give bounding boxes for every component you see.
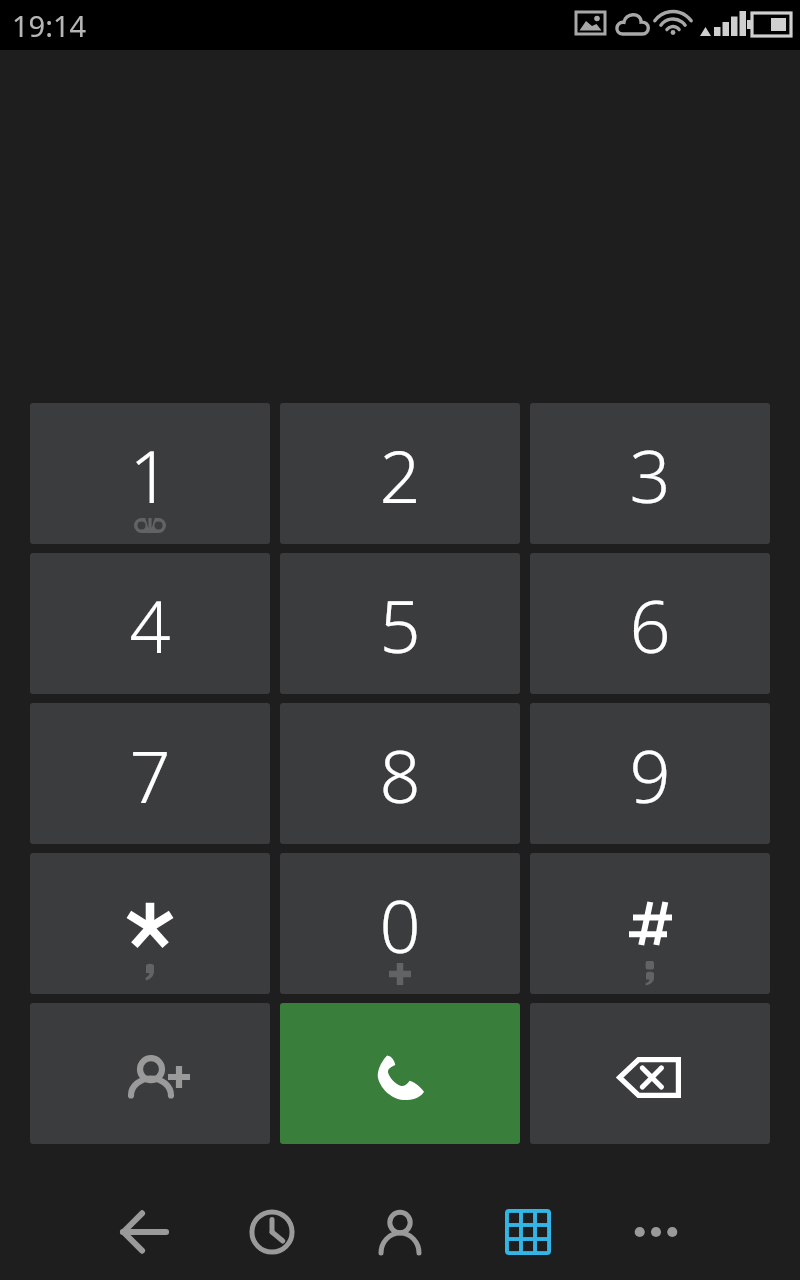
staticText: 2 [379, 426, 421, 524]
button[interactable]: 4 [30, 553, 270, 694]
button[interactable]: 6 [530, 553, 770, 694]
button[interactable]: More options [592, 1144, 720, 1280]
button[interactable]: Back [80, 1144, 208, 1280]
button[interactable]: Add contact [30, 1003, 270, 1144]
staticText: 6 [629, 576, 671, 674]
button[interactable]: Delete [530, 1003, 770, 1144]
button[interactable]: 3 [530, 403, 770, 544]
button[interactable]: 5 [280, 553, 520, 694]
button[interactable]: # [530, 853, 770, 994]
staticText: 9 [629, 726, 671, 824]
staticText: 7 [129, 726, 171, 824]
button[interactable]: * [30, 853, 270, 994]
staticText: 1 [129, 426, 171, 524]
button[interactable]: 8 [280, 703, 520, 844]
staticText: 19:14 [12, 6, 87, 45]
staticText: 0 [379, 876, 421, 974]
button[interactable]: 1 [30, 403, 270, 544]
button[interactable]: Contacts [336, 1144, 464, 1280]
button[interactable]: Keypad [464, 1144, 592, 1280]
button[interactable]: Recent calls [208, 1144, 336, 1280]
staticText: 4 [129, 576, 171, 674]
staticText: 3 [629, 426, 671, 524]
button[interactable]: Call [280, 1003, 520, 1144]
staticText: 5 [379, 576, 421, 674]
button[interactable]: 7 [30, 703, 270, 844]
button[interactable]: 0 [280, 853, 520, 994]
button[interactable]: 2 [280, 403, 520, 544]
button[interactable]: 9 [530, 703, 770, 844]
staticText: 8 [379, 726, 421, 824]
